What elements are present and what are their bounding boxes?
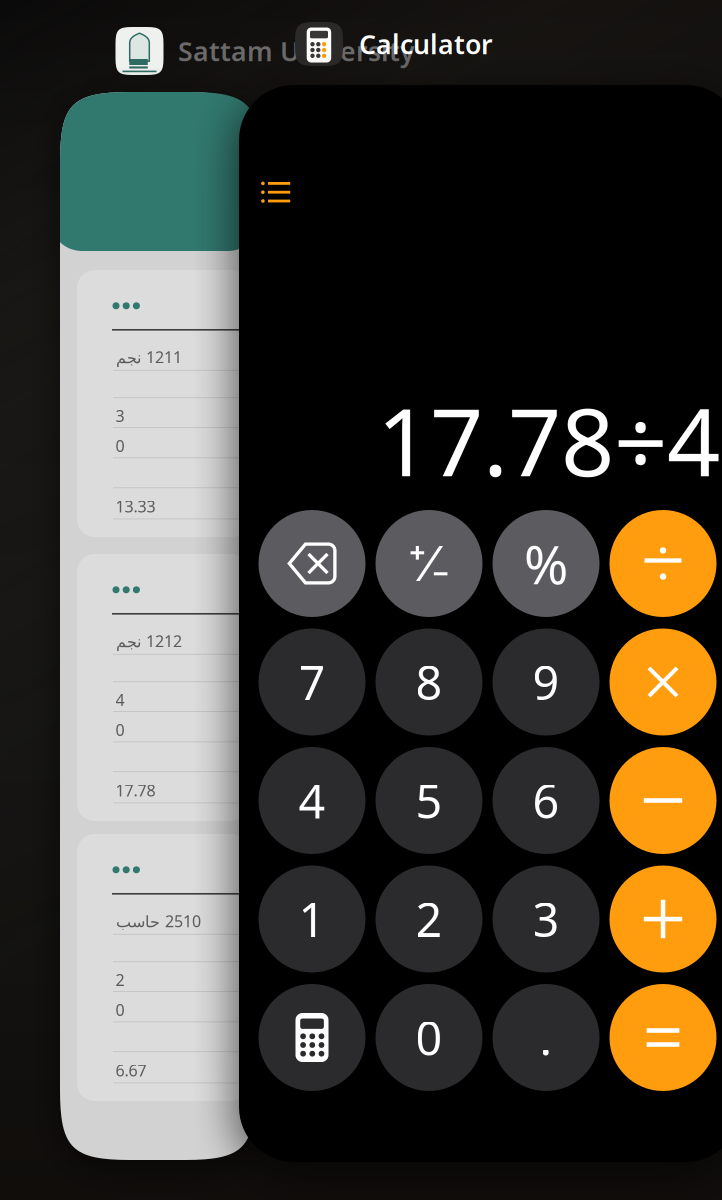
staticText: 1211 نجم [115, 346, 181, 368]
staticText: 6.67 [115, 1060, 146, 1081]
button[interactable]: 5 [375, 747, 482, 854]
staticText: 3 [532, 888, 559, 950]
staticText: 0 [115, 435, 124, 456]
staticText: 2 [115, 969, 124, 990]
button[interactable]: 8 [375, 628, 482, 735]
staticText: 7 [298, 651, 325, 713]
button[interactable]: Toggle sign [375, 510, 482, 617]
button[interactable]: 3 [492, 865, 599, 972]
button[interactable]: Divide [609, 510, 716, 617]
button[interactable]: Delete [258, 510, 365, 617]
staticText: 0 [115, 719, 124, 740]
staticText: 1212 نجم [115, 630, 181, 652]
button[interactable]: Sattam University [115, 27, 415, 75]
staticText: 17.78 [115, 780, 155, 801]
button[interactable]: . [492, 984, 599, 1091]
button[interactable]: 7 [258, 628, 365, 735]
button[interactable]: Multiply [609, 628, 716, 735]
button[interactable]: Scientific calculator [258, 984, 365, 1091]
staticText: 4 [298, 769, 325, 831]
staticText: 17.78÷4 [377, 378, 720, 502]
button[interactable]: Equals [609, 984, 716, 1091]
staticText: 6 [532, 769, 559, 831]
staticText: 5 [415, 769, 442, 831]
button[interactable]: 0 [375, 984, 482, 1091]
staticText: 0 [415, 1006, 442, 1068]
staticText: 1 [298, 888, 325, 950]
button[interactable]: Minus [609, 747, 716, 854]
staticText: Calculator [359, 26, 493, 62]
staticText: 2 [415, 888, 442, 950]
staticText: % [524, 528, 568, 599]
button[interactable]: Calculator [295, 22, 493, 66]
button[interactable]: Plus [609, 865, 716, 972]
button[interactable]: 6 [492, 747, 599, 854]
staticText: Sattam University [178, 33, 415, 69]
staticText: 13.33 [115, 496, 155, 517]
staticText: 2510 حاسب [115, 910, 200, 932]
button[interactable]: 2 [375, 865, 482, 972]
staticText: 3 [115, 405, 124, 426]
staticText: 8 [415, 651, 442, 713]
staticText: 9 [532, 651, 559, 713]
staticText: . [539, 1006, 552, 1068]
button[interactable]: 1 [258, 865, 365, 972]
button[interactable]: 4 [258, 747, 365, 854]
button[interactable]: 9 [492, 628, 599, 735]
button[interactable]: History [252, 173, 299, 211]
staticText: 4 [115, 689, 124, 710]
staticText: 0 [115, 999, 124, 1020]
button[interactable]: Percent [492, 510, 599, 617]
